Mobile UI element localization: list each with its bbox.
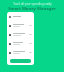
button[interactable] xyxy=(7,30,34,39)
button[interactable] xyxy=(7,39,34,48)
button[interactable] xyxy=(7,21,34,30)
button[interactable] xyxy=(7,48,34,57)
staticText: Track all your spending easily xyxy=(13,2,52,6)
staticText: Smart Money Manager xyxy=(8,6,56,12)
button[interactable] xyxy=(7,12,34,21)
button[interactable]: Get started xyxy=(10,59,31,63)
